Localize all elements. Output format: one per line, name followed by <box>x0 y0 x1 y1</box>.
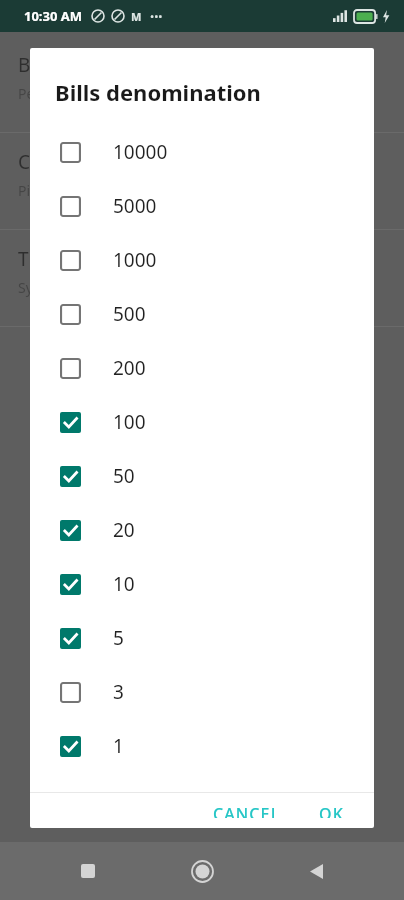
staticText: 1 <box>113 733 124 759</box>
button[interactable]: Home <box>176 845 228 897</box>
button[interactable]: 1000 <box>30 233 374 287</box>
button[interactable]: OK <box>307 793 356 828</box>
staticText: 10:30 AM <box>24 7 83 25</box>
staticText: 10 <box>113 571 135 597</box>
staticText: Currency symbol <box>18 149 168 175</box>
button[interactable]: 100 <box>30 395 374 449</box>
button[interactable]: Back <box>290 845 342 897</box>
button[interactable]: CANCEL <box>201 793 293 828</box>
button[interactable]: 5000 <box>30 179 374 233</box>
button[interactable]: 1 <box>30 719 374 773</box>
staticText: 5000 <box>113 193 157 219</box>
staticText: Bills denomination <box>55 77 261 107</box>
staticText: 1000 <box>113 247 157 273</box>
staticText: 20 <box>113 517 135 543</box>
staticText: 10000 <box>113 139 168 165</box>
staticText: ••• <box>150 9 163 24</box>
staticText: Pick a symbol shown next to amounts <box>18 181 266 200</box>
staticText: 5 <box>113 625 124 651</box>
button[interactable]: 20 <box>30 503 374 557</box>
button[interactable]: 5 <box>30 611 374 665</box>
button[interactable]: 500 <box>30 287 374 341</box>
button[interactable]: 50 <box>30 449 374 503</box>
button[interactable]: 10000 <box>30 125 374 179</box>
staticText: 100 <box>113 409 146 435</box>
staticText: OK <box>319 803 344 818</box>
staticText: CANCEL <box>213 803 281 818</box>
staticText: System default <box>18 278 116 297</box>
button[interactable]: 200 <box>30 341 374 395</box>
staticText: 200 <box>113 355 146 381</box>
staticText: 3 <box>113 679 124 705</box>
staticText: 50 <box>113 463 135 489</box>
staticText: Bills denomination <box>18 52 185 78</box>
staticText: Theme <box>18 246 80 272</box>
button[interactable]: 3 <box>30 665 374 719</box>
staticText: 500 <box>113 301 146 327</box>
staticText: M <box>131 9 142 24</box>
button[interactable]: Recents <box>62 845 114 897</box>
staticText: Per your needs <box>18 84 118 103</box>
button[interactable]: 10 <box>30 557 374 611</box>
